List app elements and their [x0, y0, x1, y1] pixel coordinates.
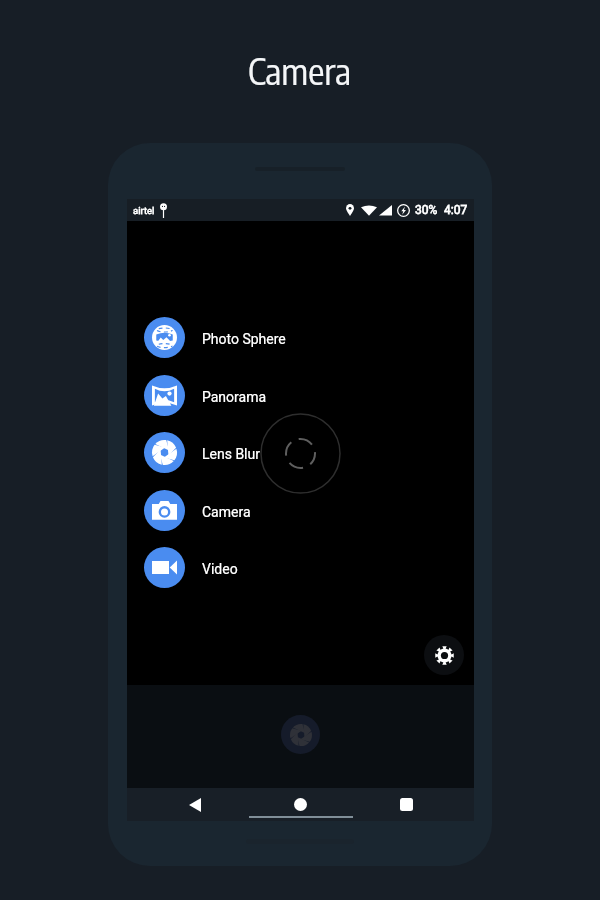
button[interactable]: Shutter — [260, 413, 341, 494]
button[interactable]: Settings — [424, 635, 464, 675]
button[interactable]: Home — [247, 788, 353, 821]
button[interactable]: Capture — [281, 715, 320, 754]
staticText: Camera — [248, 48, 352, 93]
staticText: Camera — [202, 504, 251, 520]
button[interactable]: Back — [142, 788, 247, 821]
staticText: airtel — [133, 205, 155, 216]
staticText: Photo Sphere — [202, 331, 286, 347]
button[interactable]: Recents — [353, 788, 459, 821]
button[interactable]: Lens Blur — [144, 428, 334, 476]
button[interactable]: Panorama — [144, 371, 334, 419]
staticText: Video — [202, 561, 238, 577]
button[interactable]: Camera — [144, 486, 334, 534]
staticText: Lens Blur — [202, 446, 260, 462]
staticText: Panorama — [202, 389, 267, 405]
staticText: 4:07 — [444, 203, 468, 217]
button[interactable]: Photo Sphere — [144, 313, 334, 361]
button[interactable]: Video — [144, 543, 334, 591]
staticText: 30% — [415, 203, 438, 217]
